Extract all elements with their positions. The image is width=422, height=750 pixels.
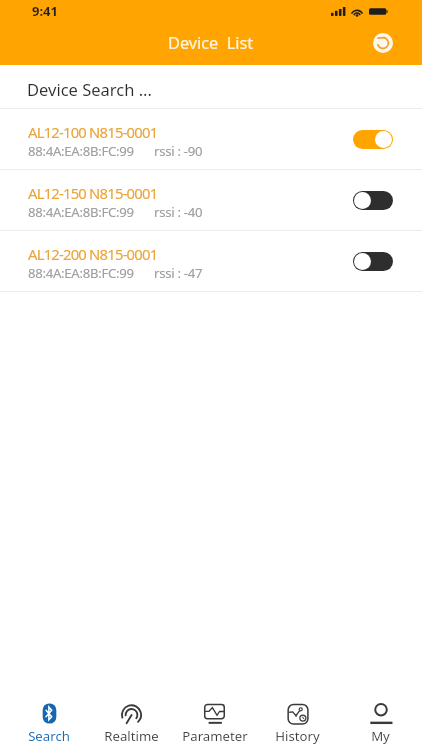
staticText: My — [371, 727, 390, 745]
button[interactable]: Disconnect device — [353, 130, 393, 149]
button[interactable]: Connect device — [353, 252, 393, 271]
button[interactable]: Search — [8, 698, 90, 745]
button[interactable]: Parameter — [173, 698, 256, 745]
button[interactable]: History — [256, 698, 339, 745]
button[interactable]: AL12-200 N815-0001 — [0, 231, 422, 291]
staticText: Realtime — [104, 727, 159, 745]
button[interactable]: My — [339, 698, 422, 745]
button[interactable]: AL12-150 N815-0001 — [0, 170, 422, 230]
staticText: 88:4A:EA:8B:FC:99 — [28, 264, 134, 282]
staticText: Search — [28, 727, 70, 745]
staticText: Device Search ... — [27, 78, 152, 100]
staticText: rssi : -47 — [154, 264, 203, 282]
button[interactable]: Connect device — [353, 191, 393, 210]
staticText: AL12-200 N815-0001 — [28, 244, 158, 264]
staticText: rssi : -40 — [154, 203, 203, 221]
staticText: 88:4A:EA:8B:FC:99 — [28, 203, 134, 221]
staticText: AL12-150 N815-0001 — [28, 183, 158, 203]
button[interactable]: Refresh — [373, 33, 393, 53]
staticText: 88:4A:EA:8B:FC:99 — [28, 142, 134, 160]
staticText: Device List — [168, 32, 254, 54]
staticText: Parameter — [182, 727, 248, 745]
staticText: AL12-100 N815-0001 — [28, 122, 158, 142]
staticText: History — [275, 727, 320, 745]
staticText: rssi : -90 — [154, 142, 203, 160]
staticText: 9:41 — [32, 2, 58, 20]
button[interactable]: Realtime — [90, 698, 173, 745]
button[interactable]: AL12-100 N815-0001 — [0, 109, 422, 169]
